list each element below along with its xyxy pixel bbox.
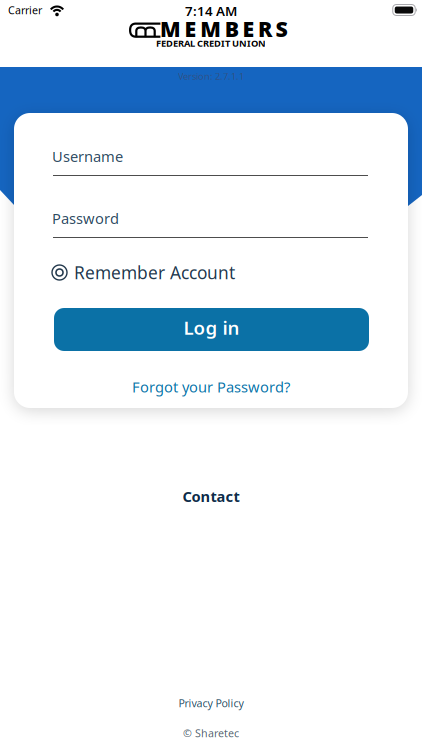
staticText: FEDERAL CREDIT UNION: [156, 37, 266, 49]
button[interactable]: Log in: [54, 308, 369, 351]
staticText: Remember Account: [74, 261, 235, 284]
button[interactable]: Contact: [182, 486, 239, 506]
staticText: Privacy Policy: [178, 696, 243, 710]
staticText: 7:14 AM: [185, 2, 237, 20]
staticText: Carrier: [8, 3, 42, 17]
staticText: © Sharetec: [183, 726, 239, 740]
staticText: Log in: [183, 315, 239, 340]
staticText: MEMBERS: [160, 14, 288, 43]
staticText: Contact: [182, 486, 239, 506]
staticText: Version: 2.7.1.1: [178, 70, 244, 82]
button[interactable]: Remember Account: [52, 261, 235, 284]
staticText: Username: [52, 146, 123, 166]
staticText: Forgot your Password?: [132, 377, 290, 396]
staticText: Password: [52, 208, 119, 228]
button[interactable]: Forgot your Password?: [132, 377, 290, 396]
button[interactable]: Privacy Policy: [178, 696, 243, 710]
